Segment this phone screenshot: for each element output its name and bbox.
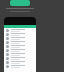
button[interactable] [4, 36, 36, 40]
button[interactable] [4, 40, 36, 44]
button[interactable] [4, 56, 36, 60]
button[interactable] [4, 48, 36, 52]
button[interactable] [10, 0, 30, 6]
button[interactable] [4, 52, 36, 56]
button[interactable] [4, 28, 36, 32]
button[interactable] [4, 32, 36, 36]
button[interactable] [4, 60, 36, 64]
button[interactable] [4, 64, 36, 68]
button[interactable] [4, 44, 36, 48]
